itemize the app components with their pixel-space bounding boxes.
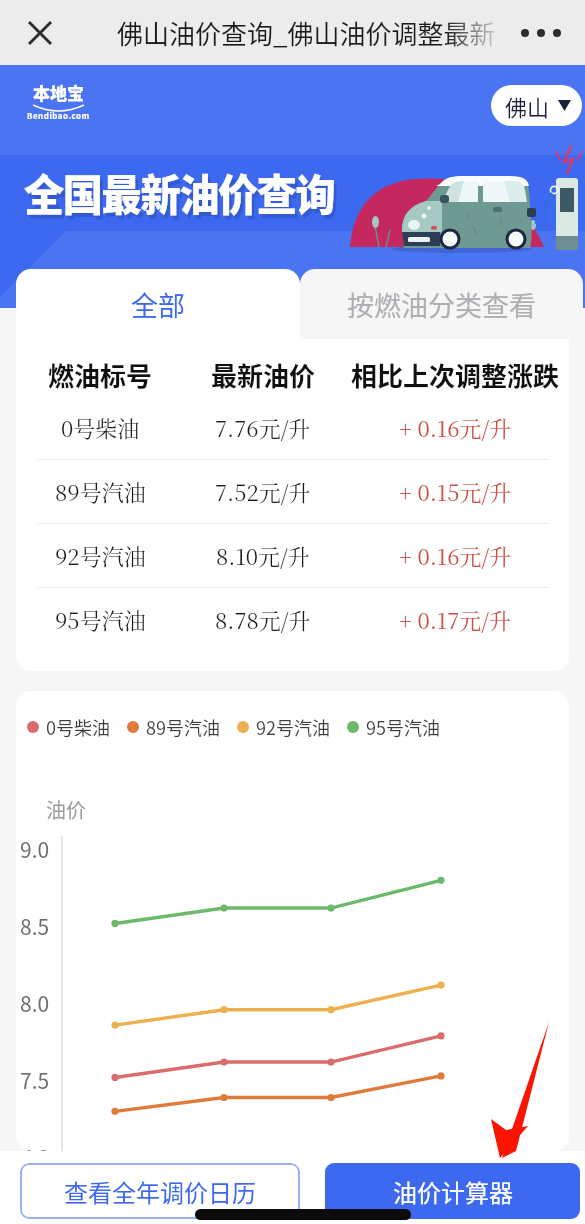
staticText: 全国最新油价查询 — [27, 165, 337, 227]
staticText: Bendibao.com — [27, 110, 90, 122]
staticText: 92号汽油 — [256, 714, 330, 740]
staticText: 8.0 — [20, 988, 50, 1016]
staticText: 本地宝 — [33, 80, 84, 105]
staticText: 8.10元/升 — [216, 540, 310, 572]
staticText: 按燃油分类查看 — [347, 285, 536, 324]
staticText: 89号汽油 — [146, 714, 220, 740]
staticText: 0号柴油 — [46, 714, 110, 740]
staticText: + 0.15元/升 — [399, 476, 512, 508]
staticText: 95号汽油 — [366, 714, 440, 740]
staticText: 油价计算器 — [393, 1174, 513, 1209]
button[interactable]: 油价计算器 — [325, 1163, 580, 1219]
staticText: + 0.17元/升 — [399, 604, 512, 636]
staticText: 查看全年调价日历 — [64, 1174, 256, 1209]
staticText: 最新油价 — [211, 356, 316, 394]
staticText: 7.52元/升 — [215, 476, 311, 508]
staticText: 7.76元/升 — [215, 412, 311, 444]
staticText: 95号汽油 — [55, 604, 146, 636]
button[interactable]: 按燃油分类查看 — [300, 269, 583, 339]
staticText: 92号汽油 — [55, 540, 146, 572]
staticText: 佛山 — [505, 90, 550, 122]
staticText: 全部 — [131, 285, 185, 324]
staticText: 0号柴油 — [61, 412, 140, 444]
button[interactable]: 全部 — [16, 269, 300, 339]
button[interactable]: Close — [16, 9, 64, 57]
staticText: 89号汽油 — [55, 476, 146, 508]
staticText: 7.0 — [20, 1142, 50, 1151]
staticText: 佛山油价查询_佛山油价调整最新 — [117, 14, 496, 52]
button[interactable]: 查看全年调价日历 — [20, 1163, 300, 1219]
staticText: 油价 — [46, 795, 86, 824]
staticText: 燃油标号 — [48, 356, 153, 394]
button[interactable]: 佛山 — [491, 85, 582, 126]
staticText: 8.5 — [20, 911, 50, 939]
button[interactable]: More options — [511, 9, 571, 57]
staticText: 相比上次调整涨跌 — [351, 356, 560, 394]
staticText: 7.5 — [20, 1065, 50, 1093]
staticText: + 0.16元/升 — [399, 412, 512, 444]
staticText: 9.0 — [20, 834, 50, 862]
staticText: 8.78元/升 — [215, 604, 311, 636]
staticText: 全国最新油价查询 — [24, 161, 334, 223]
staticText: + 0.16元/升 — [399, 540, 512, 572]
